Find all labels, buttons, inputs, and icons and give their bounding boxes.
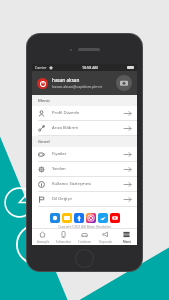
staticText: Yardım — [52, 166, 66, 172]
button[interactable]: Duyurular — [95, 229, 116, 245]
staticText: 10:58 AM — [82, 65, 98, 70]
button[interactable]: Cüzdanım — [74, 229, 95, 245]
button[interactable]: Facebook — [74, 213, 84, 223]
button[interactable]: Menü — [116, 229, 137, 245]
button[interactable]: Dil Değişir — [32, 192, 137, 206]
staticText: Carrier — [35, 65, 47, 70]
staticText: Profil Düzenle — [52, 110, 80, 116]
button[interactable]: Fiyatlar — [32, 147, 137, 161]
staticText: Duyurular — [99, 240, 113, 244]
button[interactable]: Yardım — [32, 162, 137, 176]
staticText: Arıza Bildirim — [52, 125, 79, 131]
button[interactable]: Anasayfa — [32, 229, 53, 245]
staticText: Kullanıcı Sözleşmesi — [52, 181, 92, 187]
button[interactable]: Mail — [62, 213, 72, 223]
staticText: Menü — [123, 240, 131, 244]
staticText: Dil Değişir — [52, 196, 73, 202]
button[interactable]: Instagram — [86, 213, 96, 223]
staticText: hasan.aksan@uspidom.plm.tr — [52, 84, 103, 89]
staticText: Cüzdanım — [78, 240, 92, 244]
staticText: Anasayfa — [37, 240, 49, 244]
button[interactable]: Profil Düzenle — [32, 106, 137, 120]
staticText: Copyright © 2021 BLR Bilişim Teknolojile… — [58, 225, 112, 228]
button[interactable]: YouTube — [110, 213, 120, 223]
button[interactable]: Change photo — [116, 75, 132, 91]
staticText: hasan aksan — [52, 77, 80, 83]
button[interactable]: Arıza Bildirim — [32, 121, 137, 135]
button[interactable]: Twitter — [98, 213, 108, 223]
button[interactable]: Phone — [50, 213, 60, 223]
button[interactable]: Kullanıcı Sözleşmesi — [32, 177, 137, 191]
staticText: Menü — [38, 98, 50, 104]
staticText: Fiyatlar — [52, 151, 67, 157]
button[interactable]: hasan aksan — [32, 71, 137, 95]
staticText: Kullanımlar — [56, 240, 71, 244]
button[interactable]: Kullanımlar — [53, 229, 74, 245]
staticText: Genel — [38, 139, 50, 145]
